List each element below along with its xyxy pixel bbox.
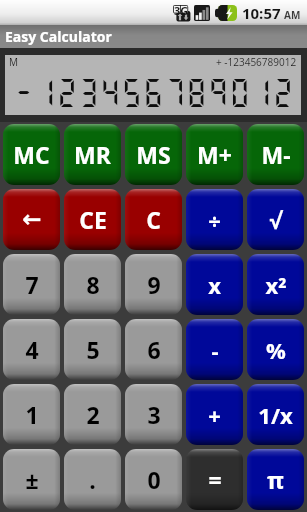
button[interactable]: 0 — [125, 449, 182, 510]
button[interactable]: 9 — [125, 254, 182, 315]
staticText: ÷ — [208, 205, 221, 235]
staticText: % — [266, 335, 286, 365]
staticText: 3G — [174, 3, 189, 18]
staticText: 1 — [25, 399, 39, 430]
button[interactable]: 5 — [64, 319, 121, 380]
button[interactable]: M+ — [186, 124, 243, 185]
staticText: 3 — [147, 399, 161, 430]
staticText: √ — [269, 205, 282, 235]
staticText: M- — [261, 139, 291, 170]
button[interactable]: 6 — [125, 319, 182, 380]
button[interactable]: Equals — [186, 449, 243, 510]
staticText: x — [208, 270, 221, 300]
button[interactable]: Plus minus — [3, 449, 60, 510]
staticText: ← — [22, 206, 42, 233]
staticText: 8 — [86, 269, 100, 300]
staticText: MC — [13, 139, 50, 170]
staticText: ± — [25, 464, 39, 495]
button[interactable]: 8 — [64, 254, 121, 315]
button[interactable]: Minus — [186, 319, 243, 380]
button[interactable]: 7 — [3, 254, 60, 315]
staticText: 5 — [86, 334, 100, 365]
staticText: π — [267, 464, 284, 495]
staticText: + -123456789012 — [216, 55, 297, 69]
staticText: 7 — [25, 269, 39, 300]
staticText: 0 — [147, 464, 161, 495]
staticText: 6 — [147, 334, 161, 365]
staticText: - — [211, 335, 219, 365]
button[interactable]: Backspace — [3, 189, 60, 250]
staticText: . — [89, 464, 96, 495]
button[interactable]: Percent — [247, 319, 304, 380]
button[interactable]: 1 — [3, 384, 60, 445]
button[interactable]: MC — [3, 124, 60, 185]
staticText: MR — [74, 139, 111, 170]
staticText: M — [9, 55, 19, 69]
staticText: AM — [284, 8, 301, 22]
staticText: 10:57 — [242, 3, 281, 23]
staticText: x² — [265, 270, 287, 300]
button[interactable]: Pi — [247, 449, 304, 510]
staticText: CE — [79, 204, 107, 235]
staticText: 2 — [86, 399, 100, 430]
button[interactable]: Plus — [186, 384, 243, 445]
staticText: = — [208, 464, 222, 495]
button[interactable]: MR — [64, 124, 121, 185]
staticText: C — [146, 204, 161, 235]
staticText: 1/x — [258, 400, 293, 430]
button[interactable]: 2 — [64, 384, 121, 445]
button[interactable]: Divide — [186, 189, 243, 250]
button[interactable]: C — [125, 189, 182, 250]
button[interactable]: Square — [247, 254, 304, 315]
button[interactable]: Reciprocal — [247, 384, 304, 445]
button[interactable]: 3 — [125, 384, 182, 445]
button[interactable]: M- — [247, 124, 304, 185]
staticText: + — [208, 400, 221, 430]
staticText: Easy Calculator — [5, 27, 112, 46]
button[interactable]: Multiply — [186, 254, 243, 315]
staticText: -123456789012 — [13, 75, 294, 110]
staticText: 4 — [25, 334, 39, 365]
staticText: M+ — [197, 139, 232, 170]
staticText: 9 — [147, 269, 161, 300]
button[interactable]: CE — [64, 189, 121, 250]
button[interactable]: 4 — [3, 319, 60, 380]
button[interactable]: MS — [125, 124, 182, 185]
button[interactable]: Decimal point — [64, 449, 121, 510]
button[interactable]: Square root — [247, 189, 304, 250]
staticText: MS — [136, 139, 171, 170]
